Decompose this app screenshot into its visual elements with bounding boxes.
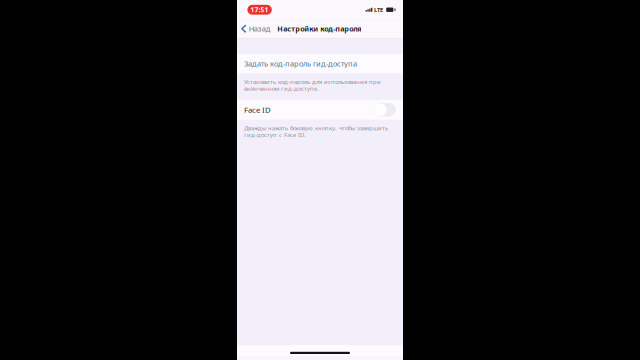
- staticText: Назад: [249, 24, 270, 34]
- staticText: Настройки код-пароля: [277, 24, 361, 34]
- staticText: LTE: [374, 6, 383, 13]
- staticText: Установить код-пароль для использования …: [244, 78, 381, 92]
- button[interactable]: Назад: [237, 21, 273, 37]
- staticText: Дважды нажать боковую кнопку, чтобы заве…: [244, 124, 388, 139]
- staticText: Face ID: [244, 104, 271, 115]
- button[interactable]: Задать код-пароль гид-доступа: [237, 54, 403, 73]
- staticText: Задать код-пароль гид-доступа: [244, 58, 357, 69]
- staticText: 17:51: [251, 5, 269, 14]
- button[interactable]: Face ID: [373, 103, 396, 116]
